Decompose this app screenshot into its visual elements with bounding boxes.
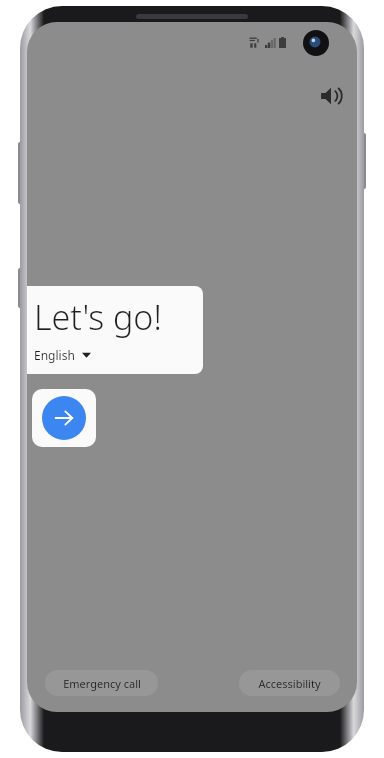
staticText: English <box>34 347 75 363</box>
button[interactable]: Voice assistant <box>309 74 353 118</box>
staticText: Emergency call <box>63 676 141 691</box>
staticText: Let's go! <box>34 294 162 340</box>
button[interactable]: Emergency call <box>45 670 158 696</box>
staticText: Accessibility <box>258 676 321 691</box>
button[interactable]: Next <box>32 389 96 447</box>
button[interactable]: English <box>34 347 91 363</box>
button[interactable]: Let's go! <box>27 286 203 374</box>
button[interactable]: Accessibility <box>239 670 340 696</box>
